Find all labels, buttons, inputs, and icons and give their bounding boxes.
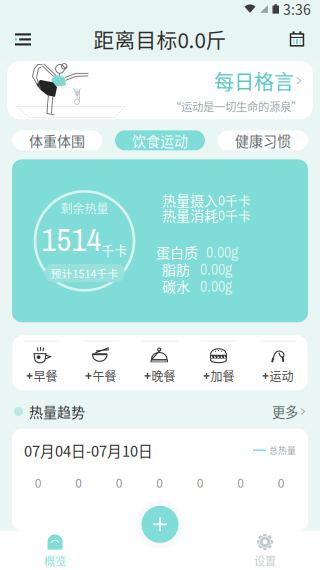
staticText: 0 [35,474,42,491]
staticText: 0.00g [200,258,232,280]
staticText: 概览 [44,552,66,569]
staticText: 健康习惯 [235,130,291,150]
staticText: 热量消耗 [162,205,218,225]
button[interactable]: Calendar [274,19,320,59]
staticText: 1514 [41,218,101,261]
button[interactable]: 早餐 [12,335,71,390]
staticText: 3:36 [283,0,311,19]
staticText: 剩余热量 [60,199,108,217]
button[interactable]: 午餐 [71,335,130,390]
button[interactable]: 概览 [0,531,110,570]
staticText: 0 [156,474,163,491]
button[interactable]: 健康习惯 [218,130,308,150]
staticText: 总热量 [269,444,296,456]
button[interactable]: 每日格言 [7,61,313,119]
staticText: 0.00g [200,275,232,297]
button[interactable]: Menu [0,19,46,59]
staticText: 0 [116,474,123,491]
button[interactable]: 设置 [210,531,320,570]
staticText: 更多 [272,402,298,421]
staticText: 0千卡 [218,191,251,209]
staticText: 0千卡 [218,206,251,224]
staticText: 每日格言 [214,66,294,95]
staticText: 运动 [269,367,293,385]
staticText: 饮食运动 [132,130,188,150]
staticText: 设置 [254,552,276,569]
button[interactable]: 运动 [248,335,307,390]
button[interactable]: 加餐 [189,335,248,390]
staticText: 0.00g [206,241,238,263]
staticText: “运动是一切生命的源泉” [170,98,302,114]
button[interactable]: 体重体围 [12,130,102,150]
staticText: 千卡 [101,240,127,259]
staticText: 0 [75,474,82,491]
staticText: 蛋白质 [156,242,198,262]
staticText: 0 [237,474,244,491]
button[interactable]: 饮食运动 [115,130,205,150]
staticText: 午餐 [92,367,116,385]
staticText: 热量摄入 [162,190,218,210]
staticText: 脂肪 [162,259,190,279]
staticText: 07月04日-07月10日 [24,440,153,461]
button[interactable]: 更多 [272,402,306,421]
staticText: 碳水 [162,276,190,296]
staticText: 体重体围 [29,130,85,150]
staticText: 加餐 [210,367,234,385]
staticText: 0 [197,474,204,491]
staticText: 早餐 [33,367,57,385]
staticText: 预计1514千卡 [50,265,118,281]
staticText: 0 [278,474,285,491]
staticText: 热量趋势 [29,401,85,422]
button[interactable]: 晚餐 [130,335,189,390]
staticText: 晚餐 [151,367,175,385]
staticText: 距离目标0.0斤 [93,24,226,54]
